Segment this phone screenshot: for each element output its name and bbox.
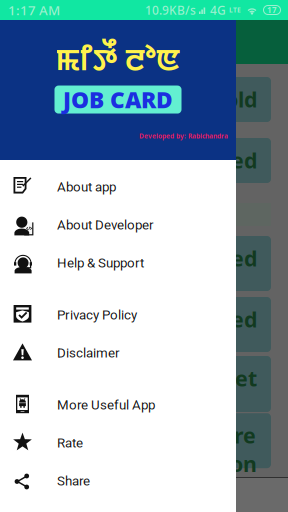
staticText: Disclaimer (57, 345, 120, 361)
button[interactable]: JOB CARD (54, 86, 181, 114)
staticText: Help & Support (57, 255, 144, 271)
button[interactable]: More Useful App (0, 386, 236, 424)
button[interactable]: Disclaimer (0, 334, 236, 372)
staticText: JOB CARD (63, 84, 173, 115)
staticText: Expenditure Information (128, 421, 257, 478)
staticText: 4G (210, 2, 226, 18)
staticText: More Useful App (57, 397, 155, 413)
button[interactable]: About app (0, 168, 236, 206)
staticText: Work Demanded (79, 244, 257, 272)
button[interactable]: Share (0, 462, 236, 500)
staticText: 10.9KB/s (145, 2, 196, 18)
staticText: 17 (267, 5, 277, 15)
button[interactable]: Privacy Policy (0, 296, 236, 334)
staticText: Developed by: Rabichandra (139, 132, 228, 140)
staticText: Work Alloted (120, 305, 257, 333)
staticText: Privacy Policy (57, 307, 137, 323)
staticText: Share (57, 473, 90, 489)
staticText: About Developer (57, 217, 154, 233)
staticText: Rate (57, 435, 83, 451)
staticText: Job Card Issued (93, 146, 257, 174)
staticText: ꯃꯤꯇꯩ ꯂꯣꯟ (55, 38, 180, 80)
staticText: About app (57, 179, 116, 195)
staticText: LTE (229, 6, 241, 14)
button[interactable]: Rate (0, 424, 236, 462)
staticText: Labour Budget (100, 364, 257, 392)
button[interactable]: About Developer (0, 206, 236, 244)
staticText: 1:17 AM (8, 1, 60, 19)
button[interactable]: Help & Support (0, 244, 236, 282)
staticText: Total Household (86, 85, 257, 113)
